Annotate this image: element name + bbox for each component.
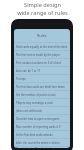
staticText: Max number of reporting cards is 5 xyxy=(16,125,61,129)
button[interactable]: The dealer shuffles the deck again xyxy=(14,147,70,148)
button[interactable]: The first turn is made by the player xyxy=(14,51,70,58)
staticText: The first two cards are dealt face down xyxy=(16,85,65,89)
staticText: In the first deal make attacks xyxy=(16,133,53,137)
staticText: wide range of rules xyxy=(17,9,68,17)
button[interactable]: Players may exchange a card xyxy=(14,99,70,106)
button[interactable]: In the first deal make attacks xyxy=(14,131,70,138)
staticText: Rules xyxy=(37,33,47,38)
button[interactable]: Set the number of points to win xyxy=(14,91,70,98)
button[interactable]: Jokers are wild cards xyxy=(14,107,70,114)
button[interactable]: Describe how to open a new game xyxy=(14,115,70,122)
button[interactable]: Max number of reporting cards is 5 xyxy=(14,123,70,130)
staticText: Jokers are wild cards xyxy=(16,109,42,113)
button[interactable]: The first two cards are dealt face down xyxy=(14,83,70,90)
staticText: First variation actions on 3 of a kind xyxy=(16,61,61,65)
button[interactable]: First variation actions on 3 of a kind xyxy=(14,59,70,66)
staticText: Set the number of points to win xyxy=(16,93,56,97)
button[interactable]: Aces can be 1 or 11 xyxy=(14,67,70,74)
staticText: Deal cards equally at the end of the dec… xyxy=(16,45,68,49)
button[interactable]: After the round the winner collects xyxy=(14,139,70,146)
button[interactable]: Trumps xyxy=(14,75,70,82)
staticText: Aces can be 1 or 11 xyxy=(16,69,41,73)
staticText: The first turn is made by the player xyxy=(16,53,61,57)
button[interactable]: Deal cards equally at the end of the dec… xyxy=(14,43,70,50)
staticText: Players may exchange a card xyxy=(16,101,53,105)
staticText: Describe how to open a new game xyxy=(16,117,60,121)
staticText: Trumps xyxy=(16,77,26,81)
staticText: After the round the winner collects xyxy=(16,141,60,145)
staticText: The dealer shuffles the deck again xyxy=(16,147,60,148)
staticText: Simple design xyxy=(24,1,61,9)
